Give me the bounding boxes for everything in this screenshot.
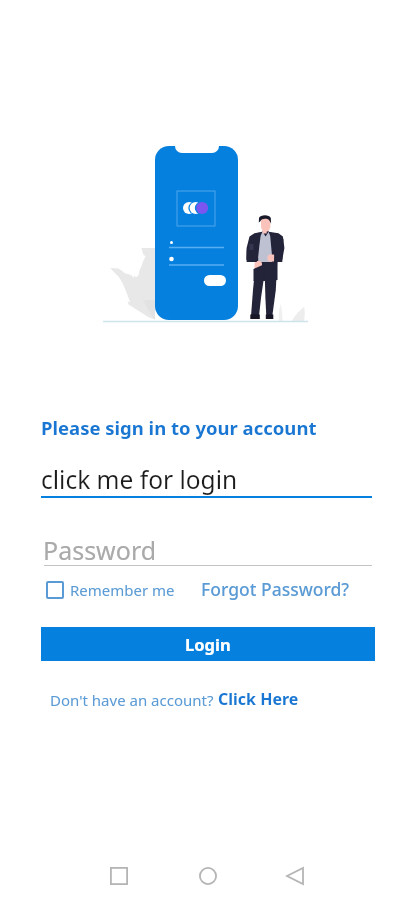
button[interactable]: Click Here [218,688,299,710]
button[interactable]: Login [41,627,375,661]
staticText: Don't have an account? [50,690,218,710]
staticText: Please sign in to your account [41,415,317,440]
staticText: Login [185,633,231,655]
button[interactable]: Back [271,852,319,900]
button[interactable]: Forgot Password? [201,577,350,601]
button[interactable]: Recent apps [95,852,143,900]
staticText: click me for login [41,463,238,496]
staticText: Forgot Password? [201,577,350,601]
staticText: Click Here [218,688,299,710]
staticText: Remember me [70,580,175,600]
staticText: Password [43,533,157,567]
button[interactable]: click me for login [41,461,372,498]
button[interactable]: Password [43,531,372,566]
button[interactable]: Home [184,852,232,900]
button[interactable]: Remember me [46,580,175,600]
